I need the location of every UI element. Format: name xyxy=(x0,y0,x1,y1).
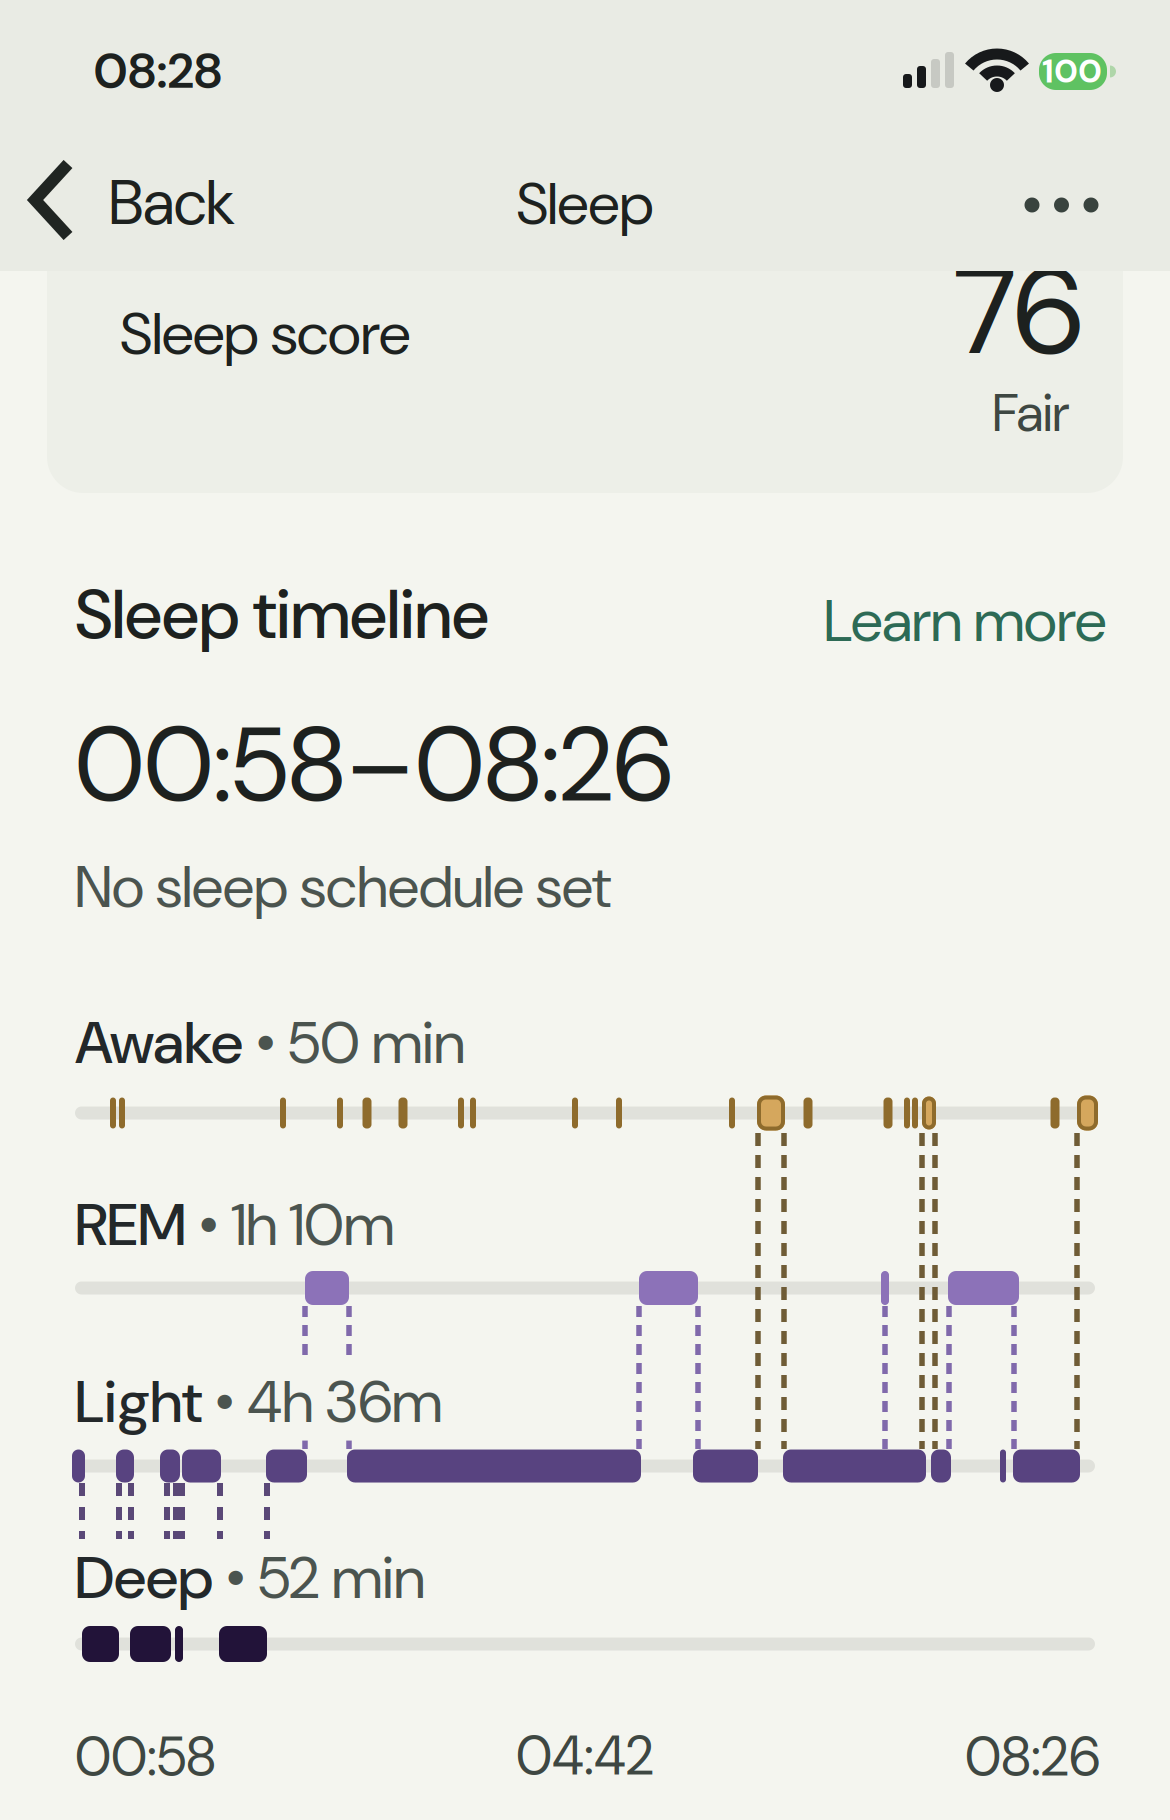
staticText: 4h 36m xyxy=(247,1363,442,1441)
staticText: • xyxy=(213,1539,258,1617)
staticText: 76 xyxy=(953,233,1083,391)
staticText: Deep xyxy=(75,1539,213,1617)
button[interactable]: Back xyxy=(0,0,250,271)
staticText: • xyxy=(202,1363,247,1441)
staticText: Sleep xyxy=(516,166,653,242)
staticText: No sleep schedule set xyxy=(75,849,611,925)
staticText: 00:58–08:26 xyxy=(75,698,672,833)
staticText: Light xyxy=(75,1363,202,1441)
staticText: Back xyxy=(109,163,235,243)
staticText: 08:28 xyxy=(93,39,222,103)
staticText: 08:26 xyxy=(965,1722,1100,1792)
staticText: Sleep timeline xyxy=(75,570,489,659)
staticText: • xyxy=(243,1004,288,1082)
staticText: 52 min xyxy=(258,1539,425,1617)
button[interactable]: Sleep score xyxy=(47,235,1123,493)
staticText: 100 xyxy=(1042,49,1102,93)
staticText: 00:58 xyxy=(75,1722,216,1792)
staticText: 04:42 xyxy=(516,1721,654,1791)
staticText: Sleep score xyxy=(120,295,410,373)
staticText: 50 min xyxy=(288,1004,465,1082)
button[interactable]: Learn more xyxy=(824,582,1106,660)
staticText: Fair xyxy=(992,379,1069,447)
staticText: Awake xyxy=(75,1004,243,1082)
button[interactable] xyxy=(990,140,1140,270)
staticText: • xyxy=(186,1186,231,1264)
staticText: 1h 10m xyxy=(231,1186,394,1264)
staticText: REM xyxy=(75,1186,186,1264)
staticText: Learn more xyxy=(824,582,1106,660)
